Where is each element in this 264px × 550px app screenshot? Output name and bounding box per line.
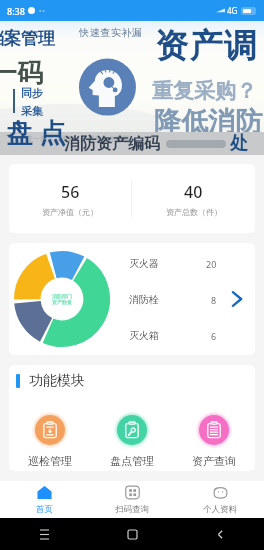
button[interactable]: 扫码查询: [88, 481, 176, 518]
staticText: 档案管理: [0, 28, 55, 49]
button[interactable]: 个人资料: [176, 481, 264, 518]
staticText: 消防栓: [129, 293, 159, 306]
staticText: 扫码查询: [115, 504, 149, 515]
staticText: 功能模块: [29, 372, 85, 390]
staticText: 6: [211, 330, 217, 342]
staticText: 一码: [0, 57, 43, 90]
staticText: 灭火箱: [129, 329, 159, 342]
button[interactable]: 盘点管理: [91, 412, 173, 468]
staticText: 灭火器: [129, 257, 159, 270]
staticText: 8:38: [7, 5, 25, 17]
staticText: 处: [230, 132, 248, 155]
staticText: 20: [206, 258, 217, 270]
staticText: 消防资产编码: [64, 134, 160, 154]
staticText: 首页: [36, 504, 53, 515]
staticText: 采集: [21, 104, 43, 118]
staticText: 资产调: [155, 25, 259, 67]
staticText: 56: [61, 181, 80, 203]
staticText: 同步: [21, 86, 43, 100]
staticText: 40: [184, 181, 203, 203]
button[interactable]: Back: [176, 518, 264, 550]
button[interactable]: 巡检管理: [9, 412, 91, 468]
staticText: 统一资产二维码 · 追溯全生命周期: [26, 134, 130, 144]
button[interactable]: Recents: [0, 518, 88, 550]
staticText: 盘点: [3, 117, 69, 150]
staticText: 盘点管理: [110, 454, 154, 468]
button[interactable]: Home: [88, 518, 176, 550]
staticText: 4G: [227, 5, 238, 16]
staticText: 降低消防: [154, 105, 262, 139]
staticText: 资产查询: [192, 454, 236, 468]
staticText: 巡检管理: [28, 454, 72, 468]
staticText: 重复采购？: [152, 78, 257, 104]
button[interactable]: 首页: [0, 481, 88, 518]
staticText: 快速查实补漏: [79, 26, 142, 39]
button[interactable]: 消防部门 资产数量: [9, 243, 255, 355]
staticText: 个人资料: [203, 504, 237, 515]
staticText: 资产净值（元）: [42, 207, 98, 217]
staticText: 资产总数（件）: [166, 207, 222, 217]
button[interactable]: 资产查询: [173, 412, 255, 468]
staticText: 8: [211, 294, 217, 306]
staticText: 消防部门 资产数量: [52, 293, 72, 305]
other: 查看更多: [226, 288, 248, 310]
